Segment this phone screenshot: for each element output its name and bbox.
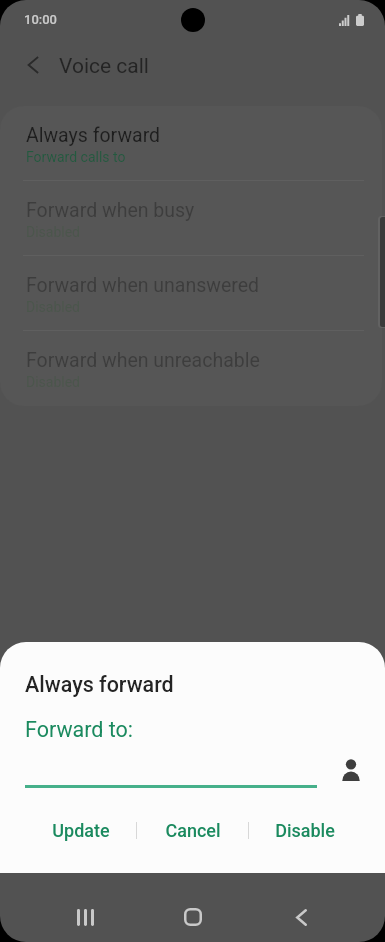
staticText: Forward when busy xyxy=(26,199,195,222)
button[interactable]: Back xyxy=(273,889,329,942)
button[interactable]: Recent apps xyxy=(57,889,113,942)
staticText: Forward when unreachable xyxy=(26,349,260,372)
staticText: Disabled xyxy=(26,374,81,390)
staticText: Forward to: xyxy=(25,717,134,742)
staticText: Disabled xyxy=(26,299,81,315)
button[interactable]: Update xyxy=(25,809,136,852)
button[interactable]: Choose contact xyxy=(332,751,369,788)
staticText: Forward when unanswered xyxy=(26,274,260,297)
staticText: Update xyxy=(52,820,110,841)
staticText: Disable xyxy=(275,820,335,841)
staticText: 10:00 xyxy=(24,12,57,27)
staticText: Voice call xyxy=(59,54,149,79)
button[interactable]: Forward when unreachable xyxy=(0,331,382,406)
staticText: Cancel xyxy=(165,820,221,841)
button[interactable]: Always forward xyxy=(0,106,382,181)
staticText: Forward calls to xyxy=(26,149,126,165)
button[interactable]: Forward when busy xyxy=(0,181,382,256)
button[interactable]: Navigate up xyxy=(9,42,57,90)
staticText: Disabled xyxy=(26,224,81,240)
staticText: Always forward xyxy=(25,672,174,697)
button[interactable]: Forward when unanswered xyxy=(0,256,382,331)
button[interactable]: Home xyxy=(165,889,221,942)
staticText: Always forward xyxy=(26,124,161,147)
button[interactable]: Disable xyxy=(249,809,360,852)
button[interactable]: Cancel xyxy=(137,809,248,852)
